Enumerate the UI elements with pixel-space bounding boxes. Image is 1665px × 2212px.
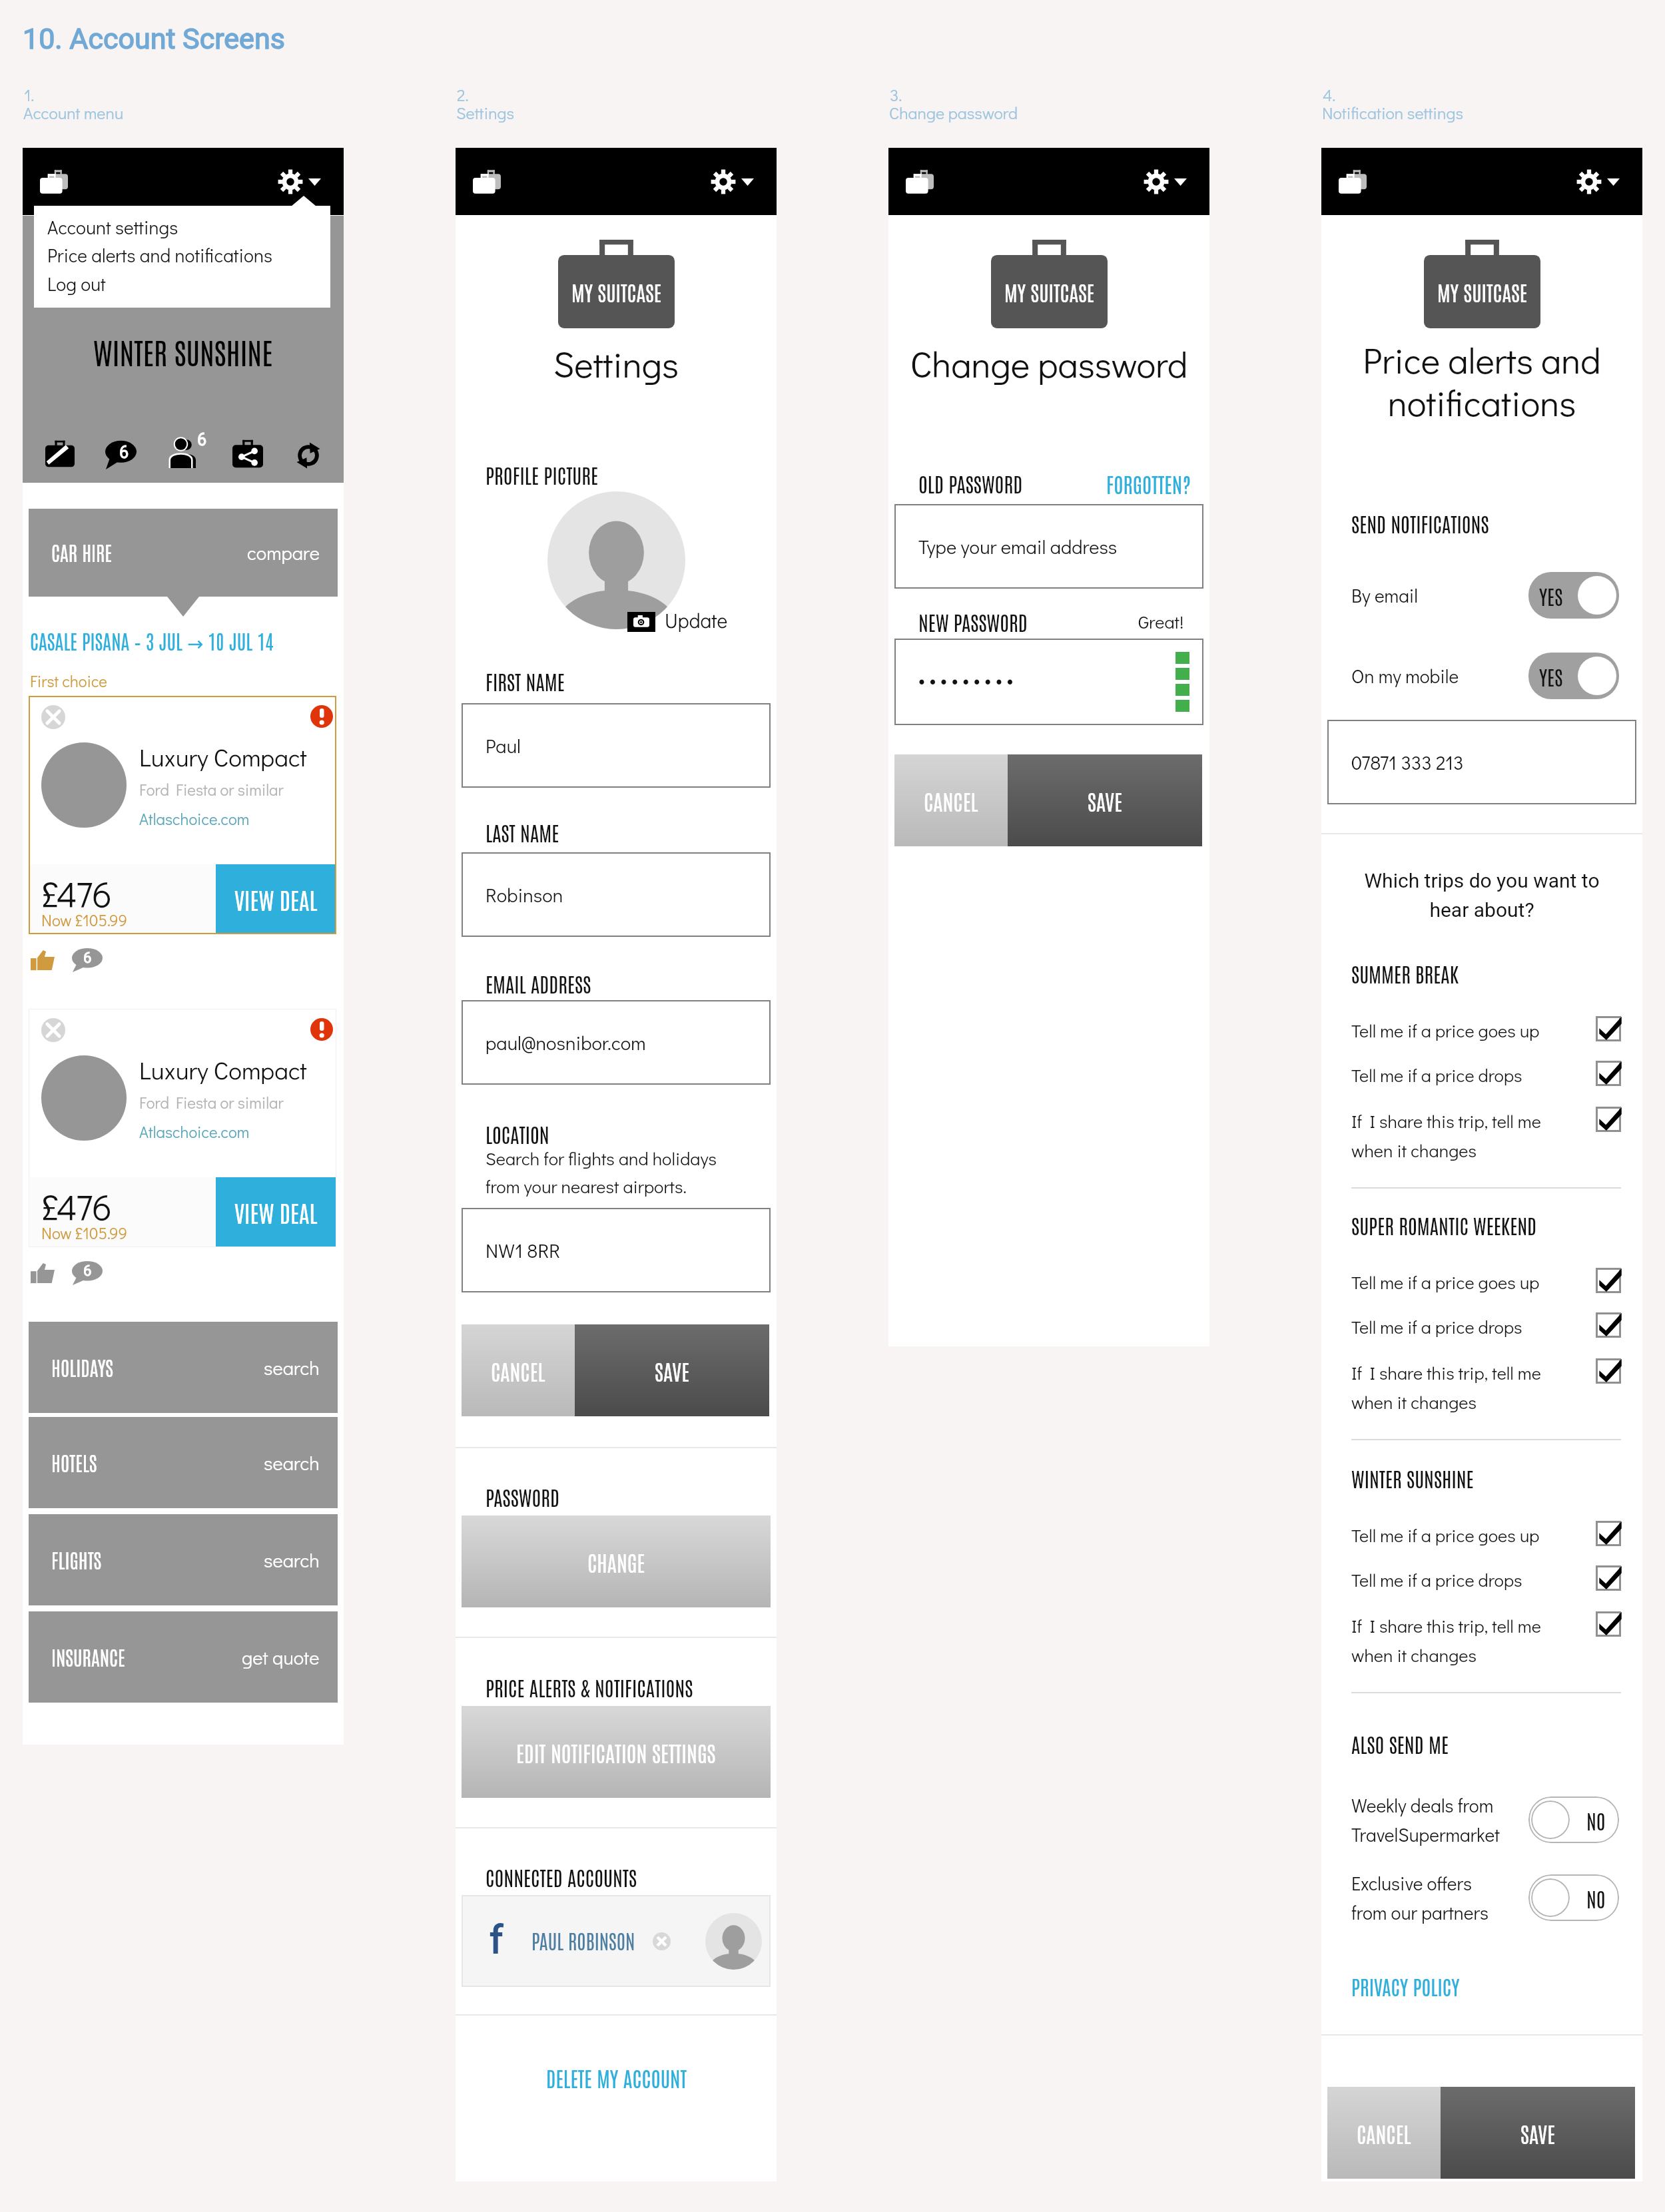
button[interactable]: If I share this trip, tell me when it ch… xyxy=(1351,1361,1621,1414)
button[interactable]: Tell me if a price drops xyxy=(1351,1063,1621,1089)
staticText: Tell me if a price drops xyxy=(1351,1315,1522,1338)
button[interactable]: Log out xyxy=(34,270,330,298)
staticText: Ford Fiesta or similar xyxy=(139,779,284,800)
button[interactable]: Tell me if a price goes up xyxy=(1351,1270,1621,1296)
button[interactable]: Edit trip xyxy=(39,433,81,475)
button[interactable]: INSURANCE xyxy=(29,1611,338,1703)
staticText: Which trips do you want to hear about? xyxy=(1321,869,1642,922)
staticText: Notification settings xyxy=(1322,102,1464,124)
button[interactable]: By email xyxy=(1351,562,1619,629)
staticText: MY SUITCASE xyxy=(1004,278,1095,305)
button[interactable]: My suitcase xyxy=(900,162,939,201)
button[interactable]: Like xyxy=(31,948,55,972)
staticText: LAST NAME xyxy=(486,819,559,845)
button[interactable]: EDIT NOTIFICATION SETTINGS xyxy=(462,1706,771,1798)
staticText: Settings xyxy=(456,340,777,388)
staticText: Weekly deals from TravelSupermarket xyxy=(1351,1793,1500,1847)
button[interactable]: 6 comments xyxy=(72,948,103,972)
button[interactable]: Exclusive offers from our partners xyxy=(1351,1864,1619,1931)
staticText: CANCEL xyxy=(1357,2119,1411,2147)
button[interactable]: CANCEL xyxy=(462,1324,575,1416)
button[interactable]: Update xyxy=(627,609,728,635)
staticText: 07871 333 213 xyxy=(1351,750,1464,775)
staticText: £476 xyxy=(41,1183,112,1231)
button[interactable]: Like xyxy=(31,1261,55,1285)
button[interactable]: FLIGHTS xyxy=(29,1514,338,1605)
button[interactable]: NW1 8RR xyxy=(462,1208,771,1292)
button[interactable]: SAVE xyxy=(1008,754,1202,846)
button[interactable]: DELETE MY ACCOUNT xyxy=(456,2058,777,2097)
button[interactable]: Account settings xyxy=(34,213,330,241)
button[interactable]: HOLIDAYS xyxy=(29,1322,338,1413)
staticText: Atlaschoice.com xyxy=(139,808,250,829)
button[interactable]: Tell me if a price drops xyxy=(1351,1568,1621,1593)
staticText: Account settings xyxy=(47,215,178,240)
staticText: Tell me if a price drops xyxy=(1351,1568,1522,1591)
button[interactable]: VIEW DEAL xyxy=(216,1177,336,1247)
staticText: OLD PASSWORD xyxy=(918,470,1023,496)
button[interactable]: My suitcase xyxy=(468,162,506,201)
button[interactable]: HOTELS xyxy=(29,1417,338,1508)
button[interactable]: Settings menu xyxy=(711,170,754,194)
staticText: PAUL ROBINSON xyxy=(531,1928,635,1954)
button[interactable]: Tell me if a price drops xyxy=(1351,1315,1621,1340)
button[interactable]: Dismiss xyxy=(41,705,65,729)
button[interactable]: Tell me if a price goes up xyxy=(1351,1523,1621,1549)
staticText: YES xyxy=(1539,583,1563,609)
button[interactable]: Type your email address xyxy=(894,504,1203,589)
button[interactable]: CAR HIRE xyxy=(29,509,338,597)
button[interactable]: 6 comments xyxy=(72,1261,103,1285)
button[interactable]: Share trip xyxy=(227,433,268,475)
staticText: paul@nosnibor.com xyxy=(486,1030,646,1055)
button[interactable]: Price alerts and notifications xyxy=(34,241,330,269)
button[interactable]: If I share this trip, tell me when it ch… xyxy=(1351,1109,1621,1162)
staticText: DELETE MY ACCOUNT xyxy=(546,2064,687,2091)
button[interactable]: Tell me if a price goes up xyxy=(1351,1019,1621,1044)
button[interactable]: PRIVACY POLICY xyxy=(1351,1973,1460,1999)
button[interactable]: Settings menu xyxy=(1144,170,1187,194)
button[interactable]: Robinson xyxy=(462,852,771,937)
staticText: Now £105.99 xyxy=(41,910,128,930)
button[interactable]: Disconnect xyxy=(653,1932,671,1950)
staticText: Log out xyxy=(47,272,106,296)
button[interactable]: CANCEL xyxy=(1327,2087,1441,2179)
staticText: Now £105.99 xyxy=(41,1223,128,1243)
button[interactable]: My suitcase xyxy=(1333,162,1372,201)
staticText: Settings xyxy=(456,102,515,124)
button[interactable]: Weekly deals from TravelSupermarket xyxy=(1351,1787,1619,1853)
staticText: Paul xyxy=(486,733,521,758)
button[interactable]: People xyxy=(164,431,205,472)
button[interactable]: Dismiss xyxy=(41,1018,65,1042)
button[interactable]: CHANGE xyxy=(462,1516,771,1607)
staticText: Luxury Compact xyxy=(139,740,307,773)
staticText: PRICE ALERTS & NOTIFICATIONS xyxy=(486,1674,693,1700)
button[interactable]: • • • • • • • • • xyxy=(894,639,1203,725)
button[interactable]: paul@nosnibor.com xyxy=(462,1000,771,1085)
button[interactable]: Refresh xyxy=(288,435,329,476)
staticText: FLIGHTS xyxy=(51,1547,102,1573)
button[interactable]: Comments xyxy=(100,433,141,475)
button[interactable]: f xyxy=(462,1895,771,1987)
button[interactable]: Paul xyxy=(462,703,771,788)
staticText: Change password xyxy=(889,102,1018,124)
staticText: Great! xyxy=(1138,610,1184,633)
button[interactable]: My suitcase xyxy=(35,162,73,201)
staticText: Robinson xyxy=(486,882,563,908)
button[interactable]: 07871 333 213 xyxy=(1327,720,1636,804)
staticText: NO xyxy=(1586,1885,1606,1911)
button[interactable]: On my mobile xyxy=(1351,643,1619,709)
staticText: Luxury Compact xyxy=(139,1053,307,1086)
staticText: CANCEL xyxy=(924,787,978,814)
button[interactable]: VIEW DEAL xyxy=(216,864,336,934)
button[interactable]: CANCEL xyxy=(894,754,1008,846)
button[interactable]: If I share this trip, tell me when it ch… xyxy=(1351,1614,1621,1667)
staticText: Tell me if a price goes up xyxy=(1351,1523,1540,1547)
staticText: SUPER ROMANTIC WEEKEND xyxy=(1351,1212,1537,1238)
button[interactable]: SAVE xyxy=(575,1324,769,1416)
button[interactable]: SAVE xyxy=(1441,2087,1635,2179)
button[interactable]: Settings menu xyxy=(278,170,321,194)
button[interactable]: Settings menu xyxy=(1577,170,1620,194)
staticText: CAR HIRE xyxy=(51,540,113,565)
button[interactable]: FORGOTTEN? xyxy=(1106,470,1191,497)
staticText: If I share this trip, tell me when it ch… xyxy=(1351,1614,1541,1667)
